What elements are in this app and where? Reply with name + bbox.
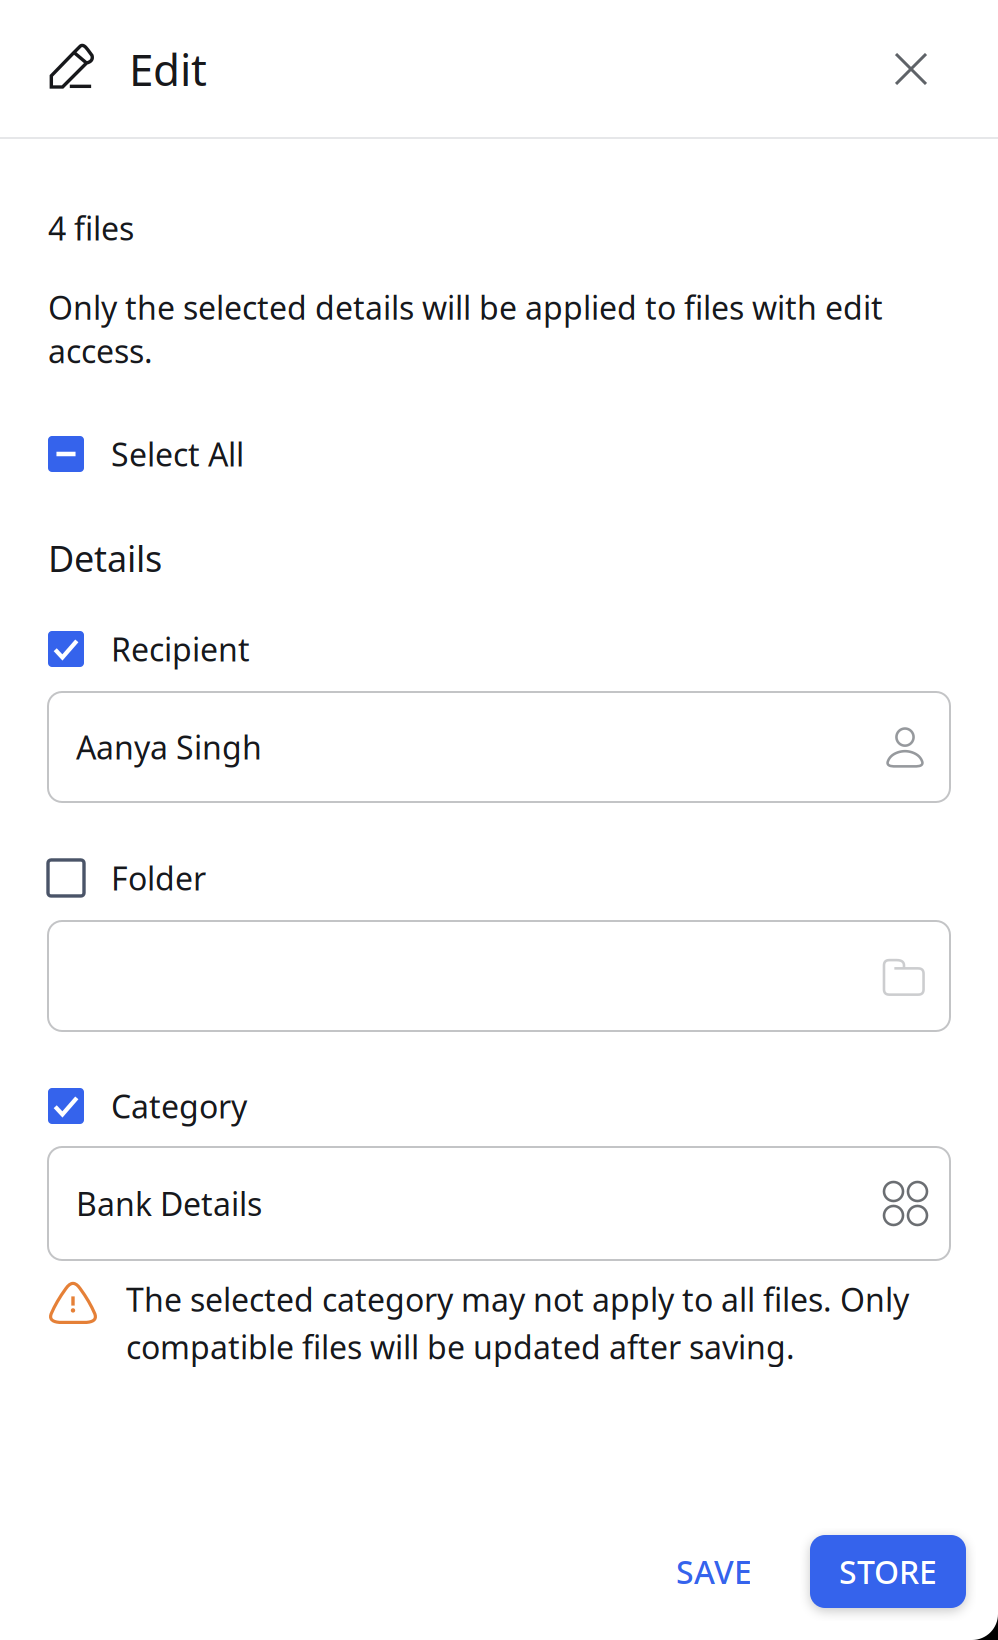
button[interactable]: SAVE [649, 1535, 779, 1608]
button[interactable] [48, 921, 950, 1031]
staticText: Details [48, 534, 162, 582]
staticText: Only the selected details will be applie… [48, 286, 883, 372]
button[interactable]: Recipient [48, 631, 950, 667]
staticText: Bank Details [76, 1182, 262, 1225]
staticText: Aanya Singh [76, 726, 262, 768]
staticText: Category [111, 1085, 247, 1127]
staticText: Edit [129, 40, 207, 98]
staticText: SAVE [676, 1550, 752, 1593]
button[interactable]: Close [866, 3, 956, 134]
staticText: Recipient [111, 628, 250, 670]
button[interactable]: STORE [810, 1535, 966, 1608]
staticText: The selected category may not apply to a… [126, 1278, 909, 1368]
staticText: Folder [111, 857, 206, 899]
button[interactable]: Select All [48, 436, 950, 472]
button[interactable]: Bank Details [48, 1147, 950, 1260]
button[interactable]: Category [48, 1088, 950, 1124]
button[interactable]: Folder [48, 860, 950, 896]
button[interactable]: Aanya Singh [48, 692, 950, 802]
button[interactable]: Edit [0, 0, 231, 138]
staticText: 4 files [48, 207, 134, 249]
staticText: STORE [839, 1550, 937, 1593]
staticText: Select All [111, 433, 244, 475]
